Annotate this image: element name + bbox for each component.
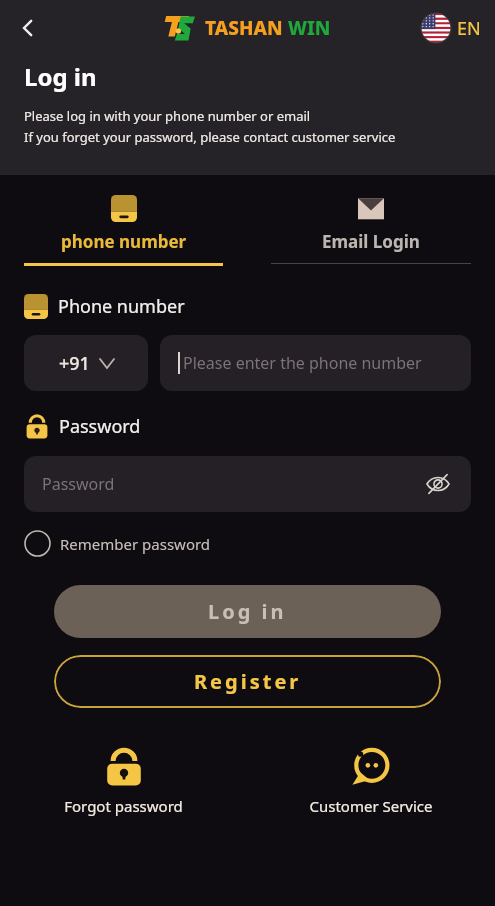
- staticText: Password: [59, 414, 141, 439]
- button[interactable]: Customer Service: [247, 746, 495, 816]
- button[interactable]: Log in: [54, 585, 441, 638]
- staticText: WIN: [288, 15, 331, 41]
- staticText: phone number: [61, 230, 187, 253]
- staticText: Remember password: [60, 534, 211, 554]
- staticText: Email Login: [322, 230, 420, 253]
- button[interactable]: Forgot password: [0, 746, 247, 816]
- staticText: Please log in with your phone number or …: [24, 107, 311, 125]
- button[interactable]: Email Login: [247, 183, 495, 268]
- button[interactable]: Show password: [423, 469, 453, 499]
- staticText: Phone number: [58, 294, 185, 319]
- button[interactable]: EN: [421, 13, 481, 43]
- staticText: Forgot password: [64, 796, 183, 816]
- staticText: Password: [42, 473, 115, 495]
- button[interactable]: +91: [24, 335, 148, 391]
- staticText: TASHAN: [205, 15, 283, 41]
- button[interactable]: Please enter the phone number: [160, 335, 471, 391]
- staticText: Please enter the phone number: [183, 352, 422, 374]
- staticText: Log in: [208, 598, 287, 625]
- button[interactable]: phone number: [0, 183, 247, 268]
- staticText: Register: [194, 668, 302, 695]
- button[interactable]: Password: [24, 456, 471, 512]
- staticText: Log in: [24, 60, 97, 93]
- button[interactable]: Remember password: [24, 530, 211, 557]
- staticText: Customer Service: [309, 796, 433, 816]
- button[interactable]: Register: [54, 655, 441, 708]
- staticText: If you forget your password, please cont…: [24, 128, 396, 146]
- staticText: +91: [59, 351, 90, 376]
- staticText: EN: [457, 16, 481, 41]
- button[interactable]: Back: [8, 8, 48, 48]
